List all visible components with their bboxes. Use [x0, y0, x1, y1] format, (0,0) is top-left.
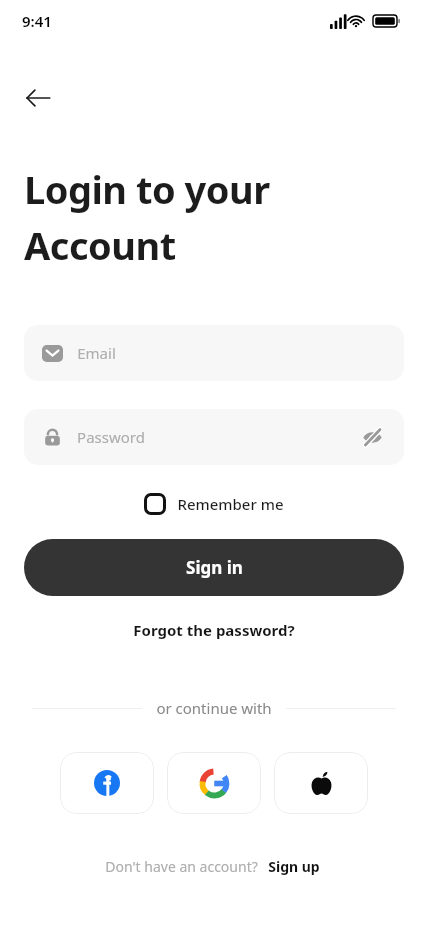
button[interactable]: Sign in with Google: [167, 752, 261, 814]
button[interactable]: Remember me: [140, 489, 288, 519]
button[interactable]: Forgot the password?: [127, 616, 301, 644]
button[interactable]: Password: [24, 409, 404, 465]
button[interactable]: Sign in with Apple: [274, 752, 368, 814]
staticText: 9:41: [22, 11, 52, 31]
button[interactable]: Sign in: [24, 539, 404, 596]
button[interactable]: Show password: [352, 417, 392, 457]
button[interactable]: Email: [24, 325, 404, 381]
button[interactable]: Sign up: [265, 855, 323, 878]
staticText: Sign up: [268, 857, 320, 876]
staticText: Sign in: [186, 556, 243, 579]
staticText: Account: [24, 219, 176, 271]
staticText: Remember me: [177, 494, 284, 514]
button[interactable]: Back: [14, 74, 62, 122]
button[interactable]: Sign in with Facebook: [60, 752, 154, 814]
staticText: Password: [77, 427, 145, 447]
staticText: Forgot the password?: [133, 620, 295, 640]
staticText: Email: [77, 343, 116, 363]
staticText: Login to your: [24, 163, 270, 215]
staticText: Don't have an account?: [105, 857, 258, 876]
staticText: or continue with: [156, 698, 272, 718]
